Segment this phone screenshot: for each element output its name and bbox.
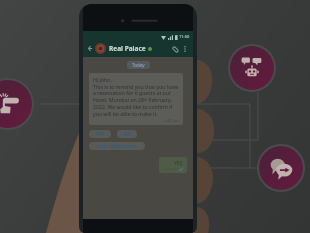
staticText: Hi John, (93, 76, 112, 83)
button[interactable]: Chatbot (230, 46, 274, 90)
staticText: NO (124, 131, 131, 137)
button[interactable]: More options (180, 44, 190, 54)
button[interactable]: NO (117, 130, 137, 138)
staticText: Real Palace (109, 44, 146, 53)
button[interactable]: I will confirm later (89, 142, 145, 150)
button[interactable]: Forward message (259, 146, 303, 190)
button[interactable]: Back (86, 44, 95, 53)
button[interactable]: YES (89, 130, 111, 138)
button[interactable]: Attach (170, 44, 180, 54)
button[interactable]: Hi John, (89, 73, 183, 125)
button[interactable]: Profile photo (95, 43, 106, 54)
staticText: YES (96, 131, 104, 137)
staticText: YES (174, 159, 183, 166)
staticText: I will confirm later (97, 143, 137, 149)
button[interactable]: YES (159, 157, 187, 173)
staticText: This is to remind you that you have a re… (93, 83, 179, 118)
staticText: 11:50 (179, 34, 190, 39)
staticText: 6:47 pm (165, 118, 179, 123)
button[interactable]: Tap to reply (0, 80, 32, 128)
staticText: Today (132, 62, 145, 68)
